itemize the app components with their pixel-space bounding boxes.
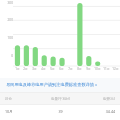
staticText: 100 — [1, 36, 13, 40]
staticText: 10月 — [94, 67, 101, 71]
staticText: 月份 — [5, 97, 38, 101]
staticText: 电量(千瓦时) — [38, 96, 83, 101]
staticText: 12月 — [112, 67, 119, 71]
staticText: 电费(元) — [83, 96, 115, 101]
staticText: 11月 — [103, 67, 110, 71]
staticText: 2月 — [23, 67, 28, 71]
staticText: 3月 — [32, 67, 37, 71]
staticText: 6月 — [59, 67, 64, 71]
staticText: 10月 — [5, 109, 38, 114]
staticText: 7月 — [68, 67, 73, 71]
staticText: 9月 — [86, 67, 91, 71]
staticText: 1月 — [15, 67, 20, 71]
staticText: 0 — [1, 54, 13, 58]
button[interactable]: 居民用电及峰谷电用户请到注电费标准查数详情 » — [0, 78, 120, 92]
staticText: 39 — [38, 109, 83, 114]
staticText: 300 — [1, 1, 13, 5]
staticText: 34.44 — [83, 109, 115, 114]
staticText: 4月 — [41, 67, 46, 71]
staticText: 200 — [1, 18, 13, 22]
staticText: 居民用电及峰谷电用户请到注电费标准查数详情 » — [6, 82, 98, 88]
staticText: 8月 — [77, 67, 82, 71]
button[interactable]: 10月 — [0, 105, 120, 117]
staticText: 5月 — [50, 67, 55, 71]
